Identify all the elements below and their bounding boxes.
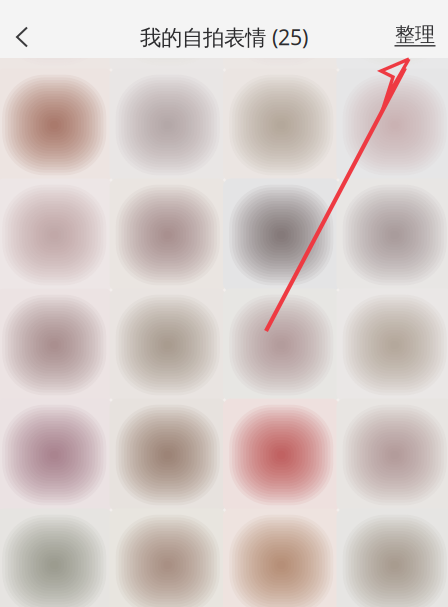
button[interactable]: Photo: [227, 0, 335, 67]
button[interactable]: Photo: [0, 293, 108, 397]
staticText: 整理: [395, 22, 435, 47]
staticText: 我的自拍表情 (25): [140, 23, 308, 51]
button[interactable]: Photo: [227, 403, 335, 507]
button[interactable]: Photo: [341, 513, 448, 607]
button[interactable]: Photo: [341, 73, 448, 177]
button[interactable]: 整理: [378, 0, 448, 58]
button[interactable]: Photo: [341, 183, 448, 287]
button[interactable]: Photo: [114, 0, 221, 67]
button[interactable]: Photo: [227, 513, 335, 607]
button[interactable]: Photo: [114, 183, 221, 287]
button[interactable]: Photo: [227, 293, 335, 397]
button[interactable]: Photo: [0, 0, 108, 67]
button[interactable]: Photo: [0, 183, 108, 287]
button[interactable]: Photo: [0, 403, 108, 507]
button[interactable]: Photo: [114, 293, 221, 397]
button[interactable]: Photo: [0, 513, 108, 607]
button[interactable]: Photo: [341, 0, 448, 67]
button[interactable]: Photo: [114, 403, 221, 507]
button[interactable]: Photo: [114, 513, 221, 607]
button[interactable]: Photo: [341, 293, 448, 397]
button[interactable]: Photo: [0, 73, 108, 177]
button[interactable]: Back: [0, 0, 50, 58]
button[interactable]: Photo: [227, 73, 335, 177]
button[interactable]: Photo: [341, 403, 448, 507]
button[interactable]: Photo: [114, 73, 221, 177]
button[interactable]: Photo: [227, 183, 335, 287]
